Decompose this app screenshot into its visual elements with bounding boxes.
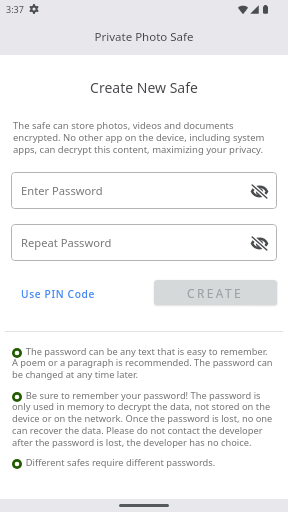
button[interactable]: Repeat Password bbox=[11, 224, 277, 261]
staticText: CREATE bbox=[187, 285, 244, 301]
button[interactable]: Show password bbox=[246, 178, 272, 204]
staticText: The password can be any text that is eas… bbox=[12, 345, 274, 381]
staticText: 3:37 bbox=[6, 3, 24, 15]
staticText: Enter Password bbox=[21, 183, 103, 198]
button[interactable]: Show password bbox=[246, 230, 272, 256]
staticText: Repeat Password bbox=[21, 235, 112, 250]
button[interactable]: CREATE bbox=[154, 280, 277, 305]
staticText: Be sure to remember your password! The p… bbox=[12, 389, 274, 449]
button[interactable]: Enter Password bbox=[11, 172, 277, 209]
staticText: Different safes require different passwo… bbox=[12, 456, 274, 469]
staticText: Use PIN Code bbox=[21, 287, 95, 301]
staticText: Create New Safe bbox=[0, 78, 288, 97]
staticText: Private Photo Safe bbox=[0, 29, 288, 45]
button[interactable]: Use PIN Code bbox=[17, 283, 99, 305]
staticText: The safe can store photos, videos and do… bbox=[13, 119, 266, 156]
